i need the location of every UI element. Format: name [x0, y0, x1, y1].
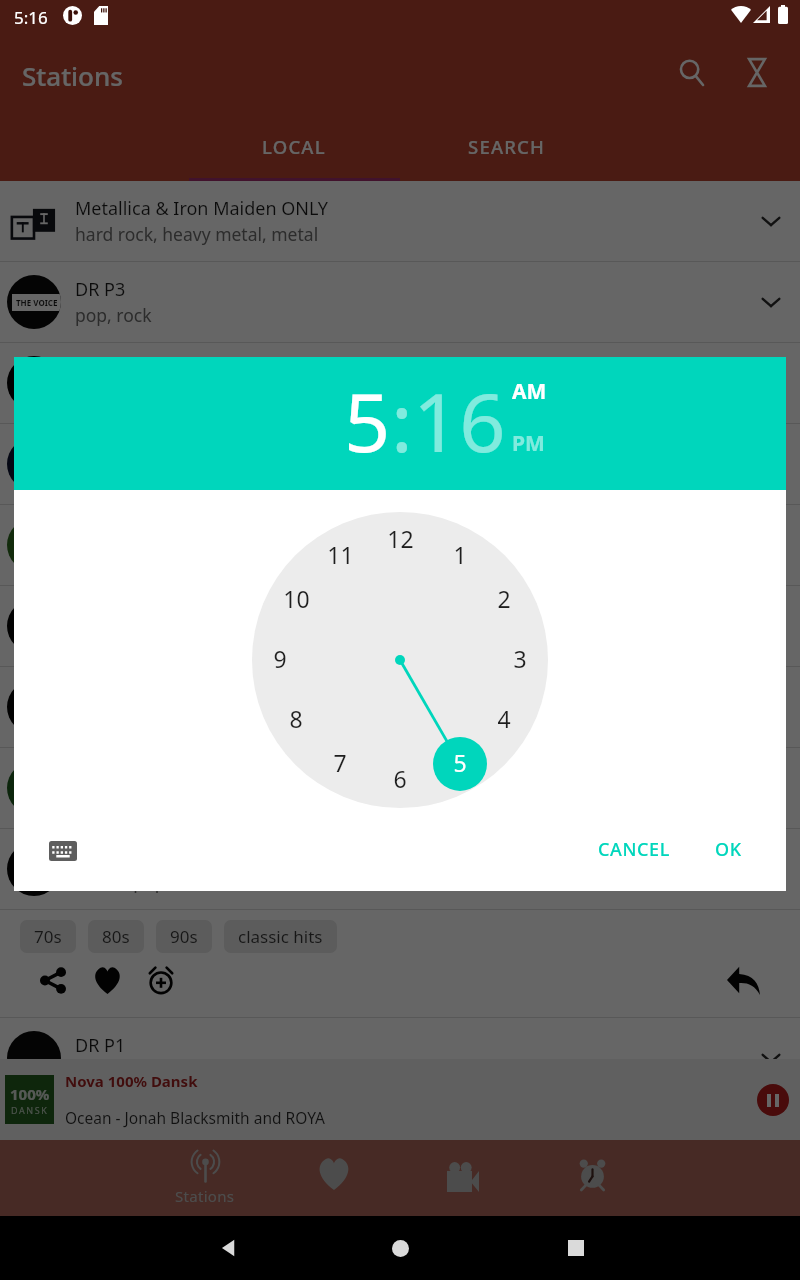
- staticText: DANSK: [11, 1104, 49, 1116]
- staticText: THE VOICE: [16, 297, 58, 308]
- button[interactable]: Switch to text input: [45, 833, 81, 869]
- button[interactable]: Pause: [757, 1084, 789, 1116]
- staticText: 1: [453, 539, 467, 570]
- button[interactable]: 80s: [88, 920, 144, 953]
- staticText: hard rock, heavy metal, metal: [75, 222, 319, 246]
- staticText: 5:16: [14, 6, 48, 29]
- button[interactable]: 100%: [0, 1059, 800, 1140]
- staticText: 11: [327, 539, 354, 570]
- staticText: SEARCH: [468, 134, 546, 159]
- button[interactable]: Expand: [742, 678, 800, 736]
- staticText: Metallica & Iron Maiden ONLY: [75, 196, 329, 221]
- staticText: pop, rock: [75, 303, 152, 327]
- staticText: 6: [393, 763, 407, 794]
- staticText: 80s: [102, 925, 130, 948]
- button[interactable]: Tab: [399, 1140, 527, 1216]
- other: Home: [392, 1240, 409, 1257]
- staticText: Ocean - Jonah Blacksmith and ROYA: [65, 1107, 325, 1128]
- button[interactable]: 90s: [156, 920, 212, 953]
- staticText: 5: [453, 747, 467, 778]
- button[interactable]: DR P1: [0, 1018, 800, 1099]
- staticText: PM: [512, 429, 545, 458]
- button[interactable]: Expand: [742, 192, 800, 250]
- button[interactable]: Nova 100% Dansk: [0, 829, 800, 910]
- button[interactable]: Tab: [270, 1140, 398, 1216]
- button[interactable]: Expand: [742, 759, 800, 817]
- button[interactable]: Tab: [528, 1140, 656, 1216]
- button[interactable]: SEARCH: [400, 134, 613, 181]
- button[interactable]: OK: [699, 825, 758, 874]
- button[interactable]: Expand: [742, 273, 800, 331]
- staticText: Stations: [22, 58, 123, 93]
- button[interactable]: Sleep timer: [733, 48, 781, 96]
- button[interactable]: Share: [34, 961, 72, 999]
- staticText: Nova 100% Dansk: [75, 844, 227, 869]
- staticText: 8: [289, 703, 303, 734]
- button[interactable]: Add alarm: [142, 961, 180, 999]
- button[interactable]: LOCAL: [187, 134, 400, 181]
- staticText: 90s: [170, 925, 198, 948]
- button[interactable]: Radio 100: [0, 667, 800, 748]
- staticText: DR P1: [75, 1033, 126, 1058]
- button[interactable]: Favorite: [88, 961, 126, 999]
- button[interactable]: Expand: [742, 435, 800, 493]
- button[interactable]: 70s: [20, 920, 76, 953]
- button[interactable]: Metallica & Iron Maiden ONLY: [0, 181, 800, 262]
- staticText: LOCAL: [262, 134, 326, 159]
- staticText: :: [391, 365, 413, 475]
- button[interactable]: Stations: [141, 1140, 269, 1216]
- button[interactable]: DR P4: [0, 505, 800, 586]
- staticText: Stations: [175, 1186, 235, 1206]
- button[interactable]: Radio Nova: [0, 586, 800, 667]
- button[interactable]: classic hits: [224, 920, 337, 953]
- staticText: 10: [283, 583, 310, 614]
- staticText: dansk, pop: [75, 870, 166, 894]
- button[interactable]: Expand: [742, 516, 800, 574]
- staticText: 5: [344, 365, 391, 475]
- staticText: 3: [513, 643, 527, 674]
- button[interactable]: Collapse: [720, 957, 766, 1003]
- button[interactable]: Pop FM: [0, 748, 800, 829]
- staticText: 70s: [34, 925, 62, 948]
- staticText: classic hits: [238, 925, 323, 948]
- staticText: DR P3: [75, 277, 126, 302]
- button[interactable]: CANCEL: [582, 825, 686, 874]
- staticText: 12: [387, 523, 414, 554]
- button[interactable]: Search: [668, 49, 716, 97]
- staticText: Nova 100% Dansk: [65, 1071, 198, 1091]
- staticText: talk: [75, 1059, 105, 1083]
- staticText: 16: [413, 365, 506, 475]
- staticText: 4: [497, 703, 511, 734]
- button[interactable]: Expand: [742, 354, 800, 412]
- staticText: AM: [512, 377, 547, 406]
- button[interactable]: The Voice: [0, 424, 800, 505]
- button[interactable]: Radio Globus: [0, 343, 800, 424]
- other: Back: [218, 1237, 240, 1259]
- button[interactable]: THE VOICE: [0, 262, 800, 343]
- staticText: CANCEL: [598, 837, 670, 862]
- button[interactable]: Expand: [742, 597, 800, 655]
- staticText: 7: [333, 747, 347, 778]
- staticText: 9: [273, 643, 287, 674]
- staticText: 2: [497, 583, 511, 614]
- button[interactable]: Expand: [742, 1029, 800, 1087]
- staticText: 100%: [10, 1084, 50, 1104]
- staticText: OK: [715, 837, 742, 862]
- button[interactable]: Expand: [742, 840, 800, 898]
